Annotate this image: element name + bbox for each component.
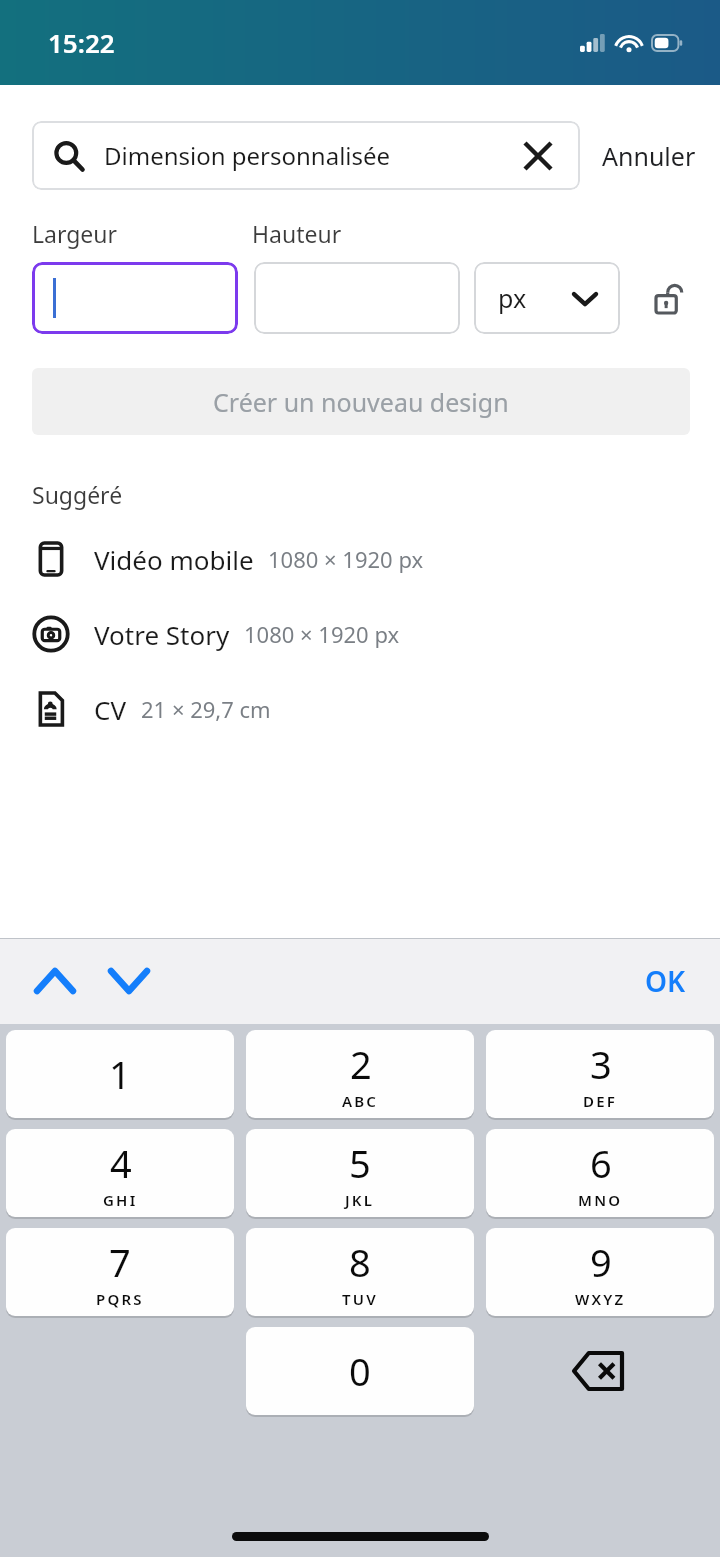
staticText: TUV — [342, 1289, 378, 1309]
button[interactable]: Clear search — [518, 136, 558, 176]
staticText: 1080 × 1920 px — [244, 619, 400, 649]
staticText: 8 — [349, 1236, 371, 1288]
staticText: Suggéré — [32, 479, 123, 510]
staticText: WXYZ — [575, 1289, 626, 1309]
staticText: 1080 × 1920 px — [268, 544, 424, 574]
staticText: PQRS — [96, 1289, 144, 1309]
button[interactable]: 1 — [6, 1030, 234, 1118]
button[interactable]: 6 — [486, 1129, 714, 1217]
button[interactable] — [254, 262, 460, 334]
staticText: Annuler — [602, 139, 696, 173]
button[interactable]: Votre Story — [32, 611, 720, 657]
staticText: 15:22 — [48, 25, 115, 60]
staticText: 7 — [109, 1236, 131, 1288]
staticText: Largeur — [32, 218, 252, 249]
staticText: 1 — [109, 1048, 131, 1100]
button[interactable]: 9 — [486, 1228, 714, 1316]
button[interactable]: 7 — [6, 1228, 234, 1316]
button[interactable]: 8 — [246, 1228, 474, 1316]
staticText: DEF — [583, 1091, 618, 1111]
staticText: GHI — [103, 1190, 138, 1210]
button[interactable]: 5 — [246, 1129, 474, 1217]
staticText: 3 — [590, 1038, 612, 1090]
button[interactable]: CV — [32, 686, 720, 732]
staticText: 9 — [590, 1236, 612, 1288]
button[interactable]: Backspace — [552, 1336, 648, 1406]
button[interactable]: 4 — [6, 1129, 234, 1217]
button[interactable]: Créer un nouveau design — [32, 368, 690, 435]
button[interactable]: OK — [637, 956, 694, 1006]
button[interactable]: 0 — [246, 1327, 474, 1415]
staticText: JKL — [345, 1190, 375, 1210]
staticText: CV — [94, 692, 127, 727]
staticText: OK — [645, 962, 686, 1000]
staticText: Hauteur — [252, 218, 342, 249]
staticText: 6 — [590, 1137, 612, 1189]
staticText: 0 — [349, 1345, 371, 1397]
staticText: 2 — [350, 1038, 372, 1090]
button[interactable]: px — [474, 262, 620, 334]
button[interactable]: Previous field — [26, 952, 84, 1010]
staticText: px — [498, 281, 527, 315]
button[interactable]: Unlock aspect ratio — [646, 275, 692, 321]
staticText: MNO — [578, 1190, 623, 1210]
button[interactable]: Next field — [100, 952, 158, 1010]
button[interactable]: Annuler — [602, 139, 696, 173]
staticText: 21 × 29,7 cm — [141, 694, 271, 724]
button[interactable] — [32, 262, 238, 334]
staticText: 4 — [110, 1137, 132, 1189]
staticText: Vidéo mobile — [94, 542, 254, 577]
staticText: Dimension personnalisée — [104, 139, 518, 172]
staticText: 5 — [349, 1137, 371, 1189]
button[interactable]: Vidéo mobile — [32, 536, 720, 582]
button[interactable]: Dimension personnalisée — [32, 121, 580, 190]
button[interactable]: 2 — [246, 1030, 474, 1118]
staticText: Votre Story — [94, 617, 230, 652]
button[interactable]: 3 — [486, 1030, 714, 1118]
staticText: ABC — [342, 1091, 379, 1111]
staticText: Créer un nouveau design — [213, 385, 509, 419]
